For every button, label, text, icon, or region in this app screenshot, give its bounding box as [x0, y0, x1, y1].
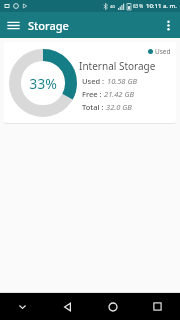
- staticText: 63 %: [133, 3, 144, 9]
- staticText: Total :: [82, 102, 104, 112]
- staticText: Used: [155, 47, 171, 56]
- staticText: 10:11 a. m.: [146, 2, 177, 10]
- staticText: Used :: [82, 76, 105, 86]
- button[interactable]: Used: [147, 46, 172, 57]
- button[interactable]: Recent apps: [135, 293, 180, 320]
- staticText: Free :: [82, 89, 102, 99]
- button[interactable]: More options: [159, 16, 177, 34]
- button[interactable]: Home: [90, 293, 135, 320]
- staticText: Internal Storage: [79, 59, 156, 73]
- button[interactable]: Hide: [0, 293, 45, 320]
- staticText: Storage: [28, 18, 69, 33]
- staticText: 33%: [29, 74, 57, 93]
- button[interactable]: Back: [45, 293, 90, 320]
- button[interactable]: Open navigation drawer: [4, 16, 22, 34]
- staticText: 10.58 GB: [107, 76, 137, 86]
- staticText: 4G: [110, 4, 116, 9]
- button[interactable]: 33%: [4, 42, 176, 123]
- staticText: 21.42 GB: [104, 89, 134, 99]
- staticText: 32.0 GB: [106, 102, 132, 112]
